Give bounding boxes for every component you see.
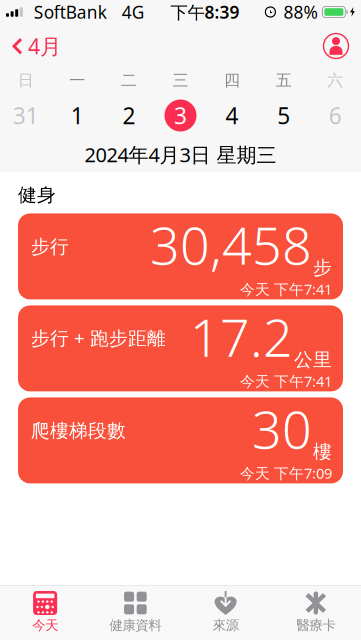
- staticText: 今天 下午7:09: [240, 463, 332, 483]
- staticText: 四: [224, 71, 240, 90]
- button[interactable]: 三: [155, 68, 206, 138]
- button[interactable]: 日: [0, 68, 52, 138]
- button[interactable]: 步行: [18, 213, 343, 299]
- staticText: 4月: [28, 32, 61, 60]
- staticText: 六: [327, 71, 343, 90]
- staticText: 健康資料: [109, 617, 161, 633]
- button[interactable]: 4月: [4, 29, 69, 63]
- staticText: 今天: [32, 617, 58, 633]
- staticText: 一: [69, 71, 85, 90]
- button[interactable]: 六: [309, 68, 361, 138]
- staticText: 公里: [294, 348, 332, 371]
- staticText: 30: [252, 394, 312, 463]
- staticText: 3: [174, 100, 187, 130]
- button[interactable]: 五: [258, 68, 309, 138]
- staticText: 2: [122, 100, 135, 130]
- staticText: 醫療卡: [296, 617, 335, 633]
- staticText: 下午8:39: [171, 0, 240, 23]
- staticText: 88%: [283, 0, 317, 23]
- button[interactable]: 今天: [0, 586, 90, 640]
- staticText: 4: [226, 100, 239, 130]
- staticText: 今天 下午7:41: [240, 371, 332, 391]
- button[interactable]: 四: [206, 68, 258, 138]
- button[interactable]: 步行 + 跑步距離: [18, 305, 343, 391]
- staticText: 步行: [31, 235, 69, 258]
- staticText: 4G: [122, 0, 145, 23]
- staticText: 17.2: [190, 302, 293, 371]
- staticText: 日: [18, 71, 34, 90]
- staticText: 30,458: [150, 210, 312, 279]
- staticText: 二: [121, 71, 137, 90]
- staticText: 爬樓梯段數: [31, 419, 126, 442]
- button[interactable]: 一: [52, 68, 103, 138]
- staticText: 步行 + 跑步距離: [31, 325, 166, 350]
- staticText: 來源: [213, 617, 239, 633]
- button[interactable]: Profile: [315, 29, 357, 63]
- staticText: 健身: [18, 183, 56, 206]
- staticText: 6: [329, 100, 342, 130]
- button[interactable]: 健康資料: [90, 586, 180, 640]
- staticText: 樓: [313, 440, 332, 463]
- button[interactable]: 來源: [180, 586, 271, 640]
- button[interactable]: 醫療卡: [271, 586, 361, 640]
- button[interactable]: 二: [103, 68, 155, 138]
- staticText: 五: [276, 71, 292, 90]
- button[interactable]: 爬樓梯段數: [18, 397, 343, 483]
- staticText: SoftBank: [34, 0, 107, 23]
- staticText: 今天 下午7:41: [240, 279, 332, 299]
- staticText: 三: [172, 71, 188, 90]
- staticText: 1: [71, 100, 84, 130]
- staticText: 5: [277, 100, 290, 130]
- staticText: 2024年4月3日 星期三: [84, 141, 276, 168]
- staticText: 31: [13, 100, 39, 130]
- staticText: 步: [313, 256, 332, 279]
